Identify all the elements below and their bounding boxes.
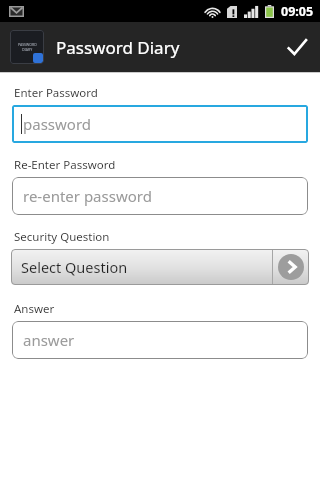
staticText: Enter Password: [14, 85, 98, 101]
staticText: Re-Enter Password: [14, 157, 116, 173]
staticText: password: [23, 114, 91, 134]
button[interactable]: App icon: [10, 30, 44, 64]
button[interactable]: Select Question: [11, 249, 309, 285]
button[interactable]: re-enter password: [12, 177, 308, 215]
staticText: Select Question: [21, 257, 128, 277]
staticText: Answer: [14, 301, 55, 317]
staticText: PASSWORD: [18, 42, 37, 47]
staticText: re-enter password: [23, 186, 152, 206]
button[interactable]: Save: [274, 22, 320, 72]
staticText: 09:05: [281, 3, 314, 20]
button[interactable]: password: [12, 105, 308, 143]
staticText: Security Question: [14, 229, 110, 245]
staticText: Password Diary: [56, 36, 274, 59]
button[interactable]: answer: [12, 321, 308, 359]
staticText: answer: [23, 330, 75, 350]
staticText: DIARY: [22, 47, 33, 52]
